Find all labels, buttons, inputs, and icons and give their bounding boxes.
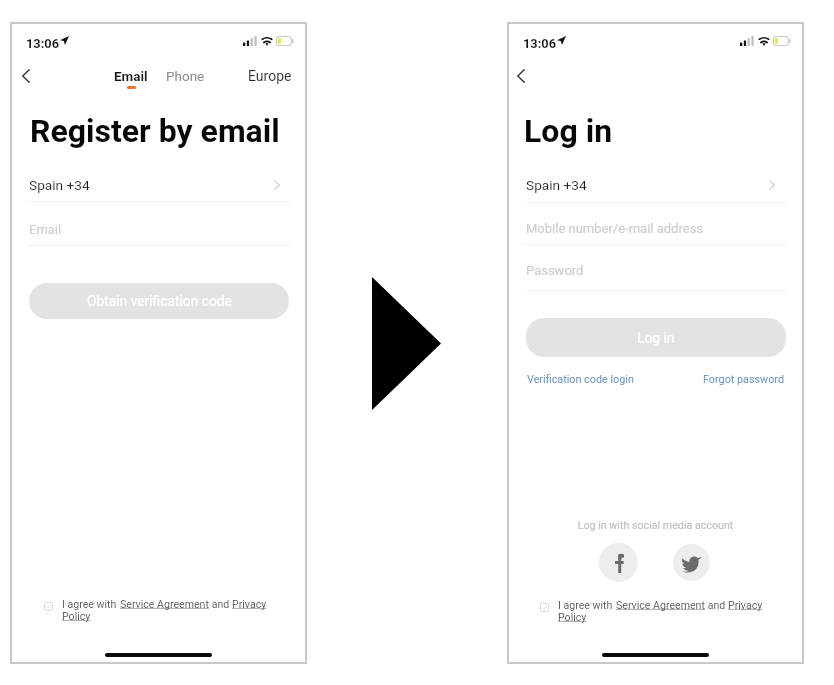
button[interactable]: Log in xyxy=(526,318,786,357)
button[interactable]: Back xyxy=(505,61,537,91)
button[interactable]: I agree with xyxy=(44,598,289,622)
staticText: Service Agreement xyxy=(120,598,209,610)
staticText: 13:06 xyxy=(26,36,59,51)
button[interactable]: Back xyxy=(10,61,42,91)
button[interactable]: Obtain verification code xyxy=(29,283,289,319)
staticText: Europe xyxy=(248,68,292,84)
staticText: Email xyxy=(29,222,62,237)
button[interactable]: Forgot password xyxy=(701,371,787,388)
staticText: Policy xyxy=(558,611,587,623)
staticText: I agree with xyxy=(558,599,616,611)
staticText: 13:06 xyxy=(523,36,556,51)
staticText: Email xyxy=(114,68,148,84)
staticText: Password xyxy=(526,263,584,278)
staticText: Service Agreement xyxy=(616,599,705,611)
staticText: Mobile number/e-mail address xyxy=(526,221,704,236)
button[interactable]: Europe xyxy=(244,65,296,87)
staticText: Log in with social media account xyxy=(507,519,804,532)
button[interactable]: I agree with xyxy=(540,599,785,623)
button[interactable]: Verification code login xyxy=(525,371,636,388)
staticText: Obtain verification code xyxy=(87,293,232,309)
button[interactable]: Facebook xyxy=(599,543,638,582)
staticText: Privacy xyxy=(728,599,763,611)
staticText: Verification code login xyxy=(527,373,634,386)
staticText: Spain +34 xyxy=(526,177,587,193)
staticText: Log in xyxy=(637,330,675,346)
staticText: Forgot password xyxy=(703,373,785,386)
staticText: Phone xyxy=(166,68,205,84)
button[interactable]: Email xyxy=(111,66,151,91)
staticText: Register by email xyxy=(30,112,280,150)
staticText: and xyxy=(705,599,728,611)
button[interactable]: Twitter xyxy=(673,544,710,581)
staticText: and xyxy=(209,598,232,610)
staticText: Policy xyxy=(62,610,91,622)
button[interactable]: Phone xyxy=(163,66,208,86)
staticText: Log in xyxy=(524,112,613,150)
staticText: I agree with xyxy=(62,598,120,610)
staticText: Spain +34 xyxy=(29,177,90,193)
staticText: Privacy xyxy=(232,598,267,610)
